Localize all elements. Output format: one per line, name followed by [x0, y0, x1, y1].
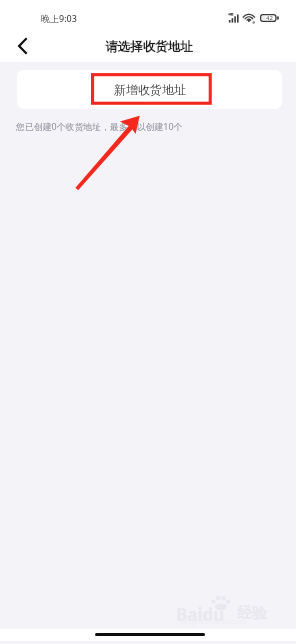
staticText: Baidu [176, 603, 225, 626]
staticText: jingyan.baidu.com [181, 616, 246, 626]
staticText: 42 [266, 14, 273, 22]
staticText: 经验 [237, 604, 267, 623]
staticText: 您已创建0个收货地址，最多可以创建10个 [16, 120, 183, 132]
button[interactable]: Back [5, 28, 40, 63]
staticText: 晚上9:03 [41, 12, 77, 24]
button[interactable]: 新增收货地址 [17, 70, 282, 109]
staticText: 新增收货地址 [114, 82, 186, 97]
staticText: 请选择收货地址 [105, 39, 193, 55]
